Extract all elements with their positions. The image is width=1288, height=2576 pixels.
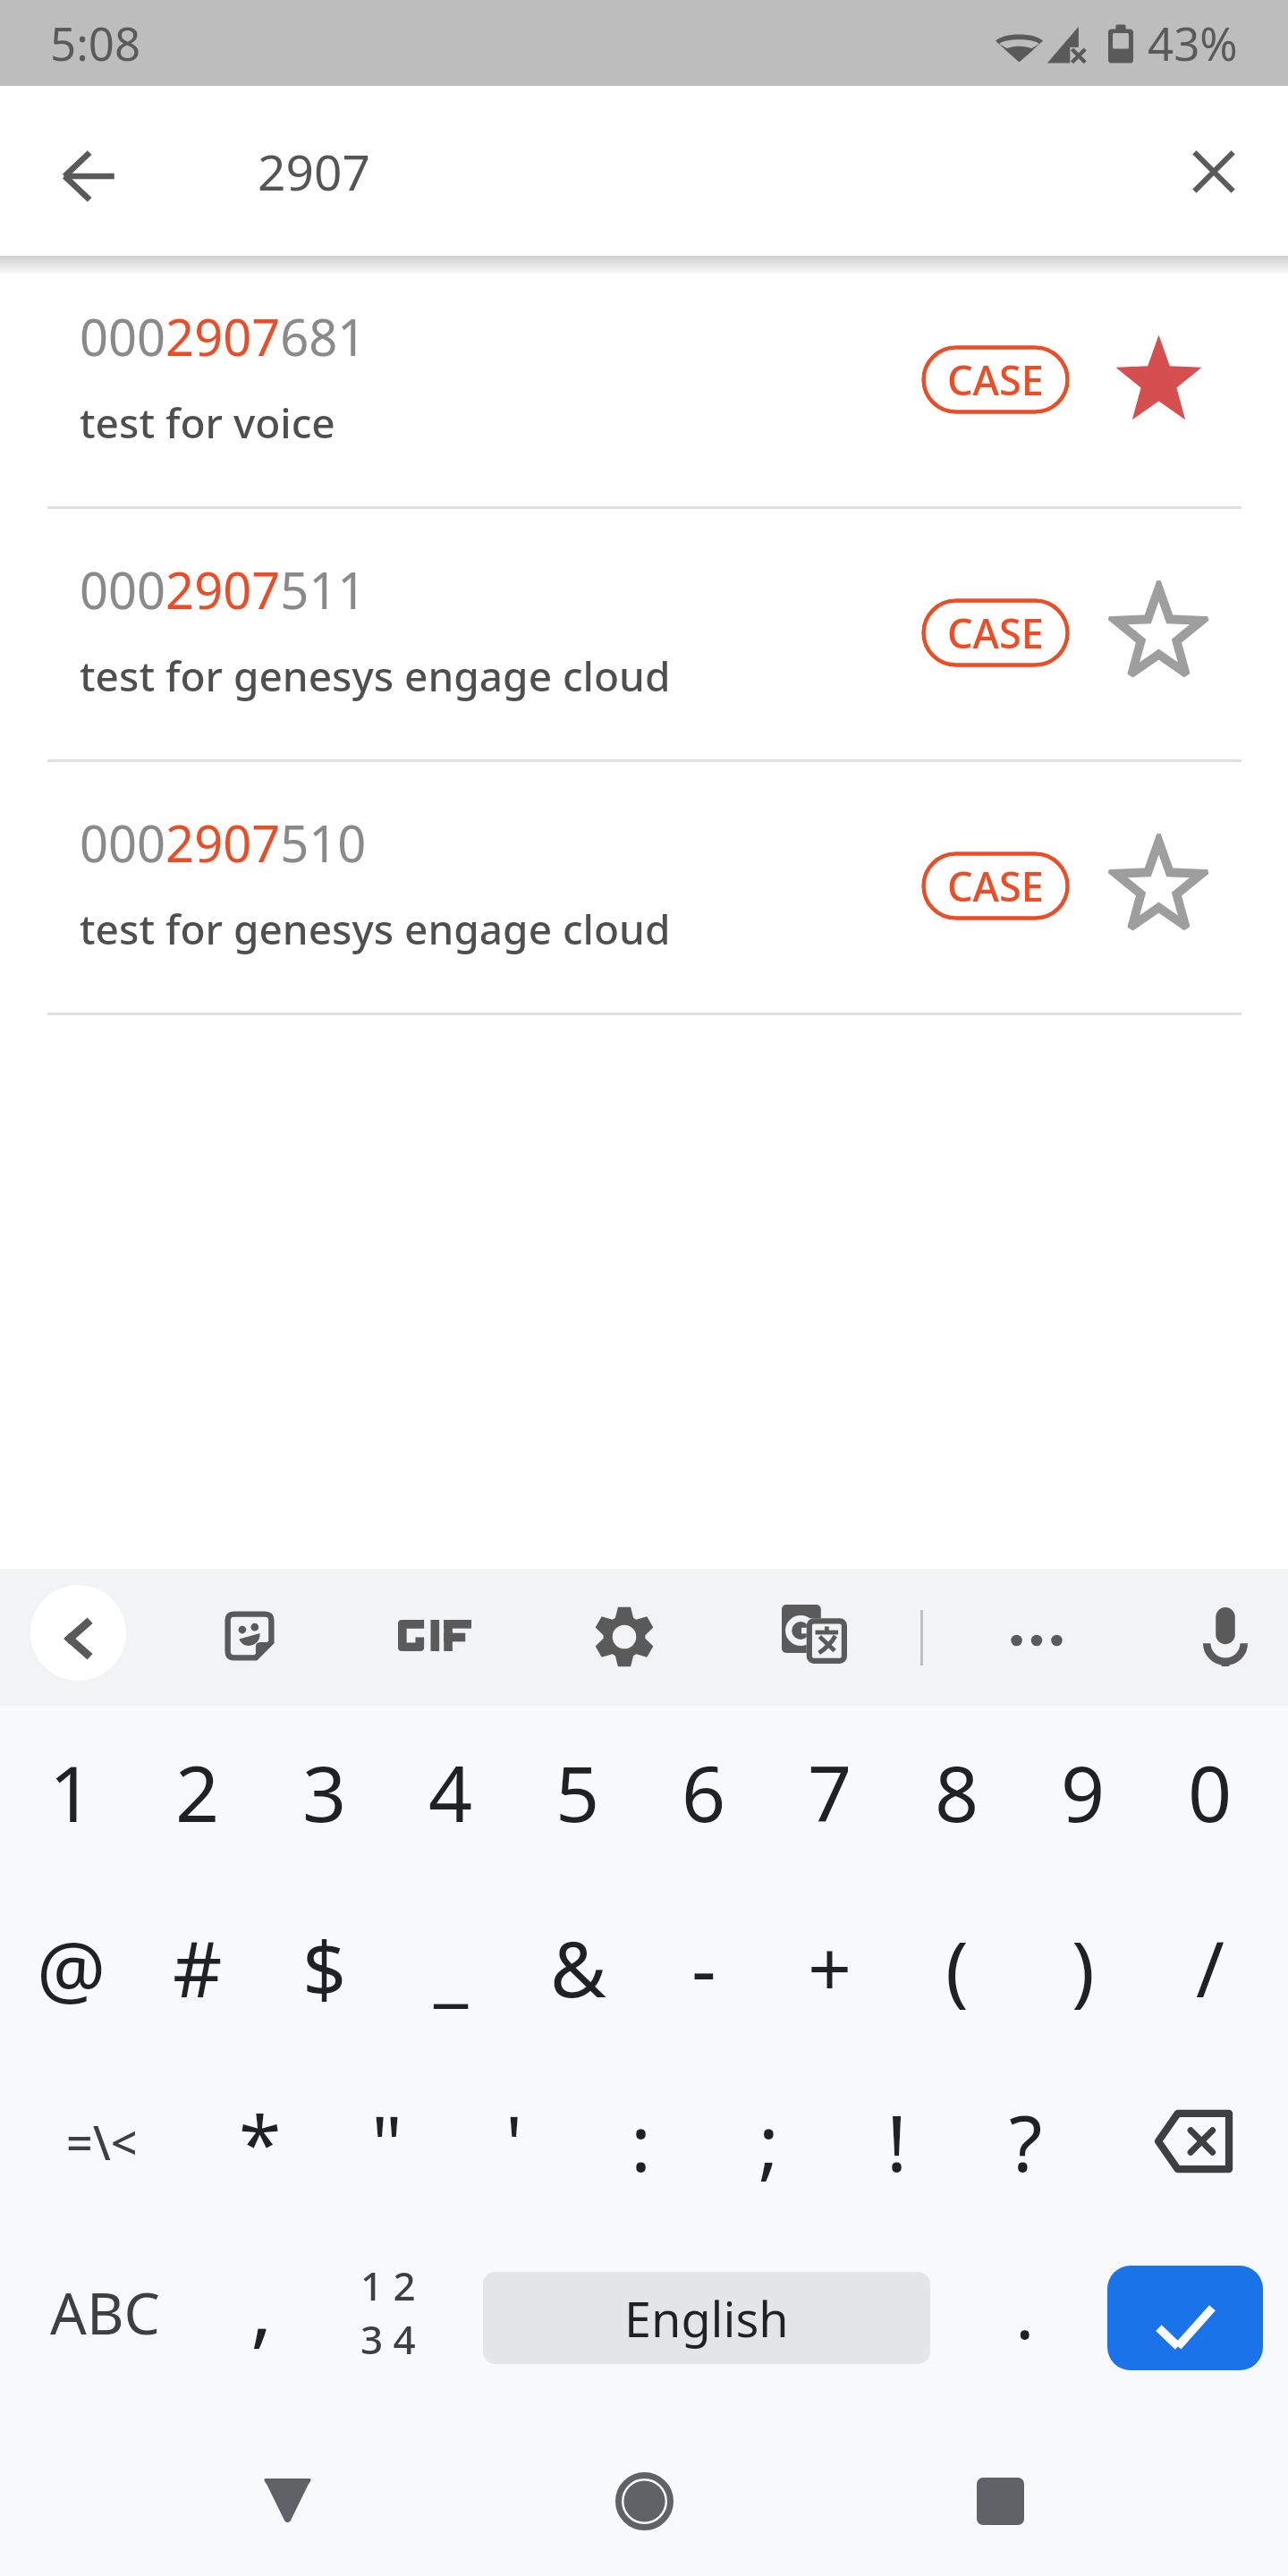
staticText: 2907 — [258, 138, 370, 205]
button[interactable]: 9 — [1020, 1724, 1147, 1859]
staticText: 3 — [302, 1740, 347, 1844]
staticText: # — [173, 1915, 223, 2020]
button[interactable]: Translate — [775, 1595, 853, 1674]
staticText: CASE — [947, 859, 1044, 913]
button[interactable]: 0002907681 — [0, 256, 1288, 509]
staticText: ABC — [50, 2274, 160, 2351]
staticText: ; — [758, 2089, 780, 2194]
button[interactable]: * — [194, 2074, 326, 2208]
staticText: 7 — [808, 1740, 852, 1844]
button[interactable]: @ — [8, 1900, 135, 2034]
staticText: 43% — [1148, 12, 1238, 73]
staticText: CASE — [947, 352, 1044, 407]
button[interactable]: CASE — [921, 345, 1070, 414]
staticText: 6 — [682, 1740, 726, 1844]
staticText: 0002907681 — [80, 302, 367, 370]
staticText: _ — [434, 1915, 469, 2020]
button[interactable]: 6 — [640, 1724, 767, 1859]
staticText: 0002907510 — [80, 809, 367, 877]
button[interactable]: ABC — [26, 2245, 183, 2379]
staticText: , — [250, 2250, 273, 2362]
staticText: =\< — [66, 2110, 138, 2173]
button[interactable]: 8 — [894, 1724, 1021, 1859]
staticText: 5 — [555, 1740, 600, 1844]
button[interactable]: Enter — [1107, 2266, 1263, 2370]
staticText: ( — [945, 1915, 969, 2020]
staticText: 9 — [1061, 1740, 1106, 1844]
staticText: test for genesys engage cloud — [80, 648, 671, 704]
staticText: ? — [1009, 2089, 1043, 2194]
button[interactable]: More options — [997, 1580, 1076, 1659]
staticText: ) — [1072, 1915, 1095, 2020]
staticText: 5:08 — [50, 12, 141, 73]
button[interactable]: Expand toolbar — [30, 1585, 126, 1681]
button[interactable]: Hide keyboard — [216, 2429, 359, 2572]
staticText: + — [808, 1915, 852, 2020]
button[interactable]: =\< — [36, 2074, 168, 2208]
staticText: : — [631, 2089, 652, 2194]
button[interactable]: Back — [30, 117, 148, 235]
button[interactable]: 1 — [8, 1724, 135, 1859]
button[interactable]: Favorite — [1106, 580, 1210, 684]
button[interactable]: 1 2 — [326, 2245, 451, 2379]
staticText: - — [691, 1915, 716, 2020]
button[interactable]: CASE — [921, 598, 1070, 667]
button[interactable]: ' — [448, 2074, 580, 2208]
staticText: 2 — [175, 1740, 220, 1844]
button[interactable]: Voice input — [1186, 1597, 1265, 1676]
staticText: test for genesys engage cloud — [80, 901, 671, 957]
button[interactable]: 0002907510 — [0, 762, 1288, 1015]
button[interactable]: , — [203, 2239, 319, 2373]
button[interactable]: Favorite — [1106, 327, 1210, 431]
button[interactable]: $ — [261, 1900, 388, 2034]
button[interactable]: / — [1147, 1900, 1274, 2034]
button[interactable]: 5 — [514, 1724, 641, 1859]
button[interactable]: # — [134, 1900, 261, 2034]
staticText: 8 — [935, 1740, 979, 1844]
staticText: 1 2 — [360, 2258, 416, 2312]
staticText: ' — [505, 2089, 523, 2194]
staticText: test for voice — [80, 394, 335, 451]
staticText: & — [550, 1915, 606, 2020]
button[interactable]: ! — [831, 2074, 963, 2208]
button[interactable]: : — [575, 2074, 708, 2208]
button[interactable]: GIF — [394, 1596, 475, 1674]
button[interactable]: " — [321, 2074, 453, 2208]
button[interactable]: _ — [387, 1900, 514, 2034]
staticText: CASE — [947, 606, 1044, 660]
button[interactable]: ( — [894, 1900, 1021, 2034]
staticText: ! — [886, 2089, 908, 2194]
button[interactable]: English — [483, 2272, 930, 2364]
button[interactable]: Clear search — [1155, 113, 1273, 231]
staticText: 0002907511 — [80, 555, 367, 623]
button[interactable]: & — [514, 1900, 641, 2034]
button[interactable]: 0002907511 — [0, 509, 1288, 762]
button[interactable]: CASE — [921, 852, 1070, 920]
button[interactable]: + — [767, 1900, 894, 2034]
button[interactable]: 7 — [767, 1724, 894, 1859]
button[interactable]: ) — [1020, 1900, 1147, 2034]
staticText: @ — [37, 1915, 106, 2020]
staticText: " — [371, 2089, 403, 2194]
button[interactable]: 0 — [1147, 1724, 1274, 1859]
button[interactable]: Recent apps — [928, 2429, 1072, 2572]
button[interactable]: Settings — [585, 1597, 664, 1676]
button[interactable]: 2 — [134, 1724, 261, 1859]
staticText: 0 — [1188, 1740, 1233, 1844]
staticText: . — [1015, 2262, 1035, 2360]
button[interactable]: Backspace — [1102, 2074, 1272, 2208]
button[interactable]: . — [967, 2243, 1083, 2377]
button[interactable]: Stickers — [210, 1597, 289, 1676]
button[interactable]: Favorite — [1106, 834, 1210, 937]
button[interactable]: ; — [703, 2074, 835, 2208]
button[interactable]: 4 — [387, 1724, 514, 1859]
staticText: / — [1196, 1915, 1224, 2020]
staticText: * — [239, 2089, 282, 2194]
staticText: $ — [302, 1915, 347, 2020]
button[interactable]: - — [640, 1900, 767, 2034]
button[interactable]: ? — [960, 2074, 1092, 2208]
button[interactable]: 3 — [261, 1724, 388, 1859]
staticText: English — [624, 2285, 789, 2351]
staticText: 3 4 — [360, 2312, 416, 2366]
button[interactable]: Home — [572, 2429, 716, 2572]
